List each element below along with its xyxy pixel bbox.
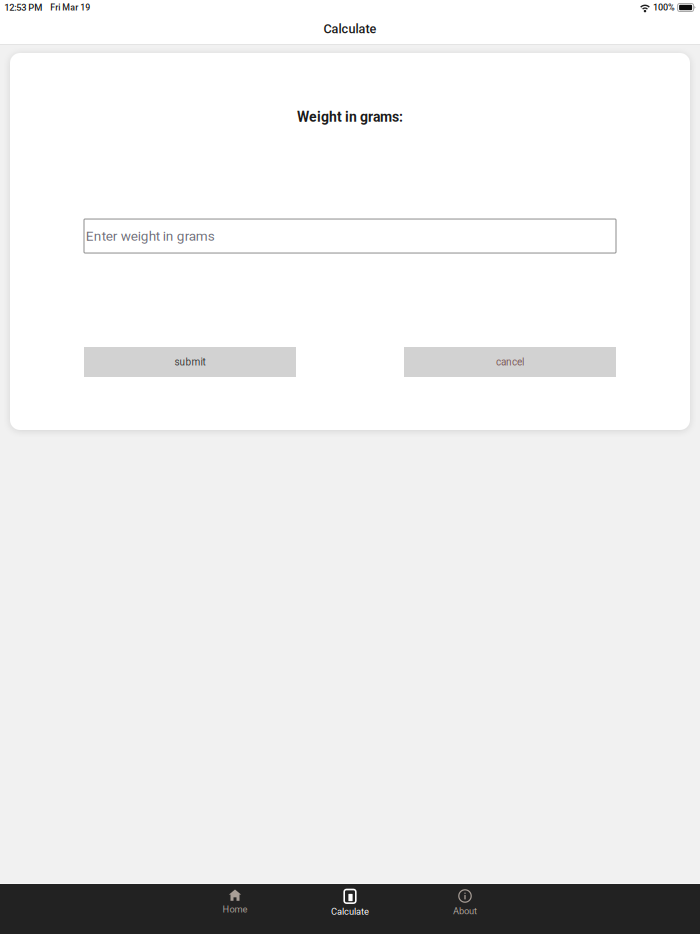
staticText: submit [174,356,205,368]
staticText: Weight in grams: [297,109,403,125]
staticText: 12:53 PM [4,2,42,13]
staticText: Fri Mar 19 [50,2,90,13]
staticText: Enter weight in grams [86,228,215,244]
button[interactable]: About [407,883,522,934]
button[interactable]: submit [84,347,296,377]
button[interactable]: cancel [404,347,616,377]
staticText: About [453,905,477,916]
staticText: 100% [653,2,675,13]
staticText: Calculate [323,22,376,36]
staticText: Home [222,904,247,915]
button[interactable]: Home [177,883,292,934]
staticText: Calculate [331,906,369,917]
staticText: cancel [496,356,524,368]
button[interactable]: Calculate [292,883,407,934]
